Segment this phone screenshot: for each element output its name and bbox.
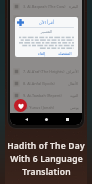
staticText: التوبة bbox=[70, 93, 79, 97]
button[interactable]: 4. Aal-e-Imran (Family) bbox=[10, 12, 82, 24]
staticText: آل عمران bbox=[63, 16, 79, 21]
button[interactable]: Back bbox=[21, 114, 31, 124]
other: Add bbox=[17, 19, 24, 26]
staticText: أقرأ الآن bbox=[26, 19, 67, 25]
staticText: 4. Aal-e-Imran (Family) bbox=[23, 16, 63, 21]
staticText: 8. Al-Anfal (Spoils) bbox=[23, 81, 68, 86]
staticText: إلغاء bbox=[38, 51, 46, 56]
button[interactable]: 9. At-Tawbah (Repent) bbox=[10, 89, 82, 101]
staticText: 3. Al-Baqarah (The Cow) bbox=[23, 4, 69, 9]
button[interactable]: 8. Al-Anfal (Spoils) bbox=[10, 77, 82, 89]
button[interactable]: 10. Yunus (Jonah) bbox=[10, 101, 82, 113]
button[interactable]: 7. Al-A'raf (The Heights) bbox=[10, 65, 82, 77]
staticText: الأعراف bbox=[66, 69, 79, 73]
button[interactable]: المفضلة bbox=[55, 50, 75, 57]
staticText: التفسير bbox=[15, 30, 78, 34]
button[interactable]: Favourites bbox=[14, 99, 27, 112]
staticText: Hadith of The Day bbox=[7, 140, 85, 152]
staticText: الأنفال bbox=[68, 81, 79, 85]
button[interactable]: 3. Al-Baqarah (The Cow) bbox=[10, 0, 82, 12]
staticText: يونس bbox=[70, 105, 79, 109]
staticText: 10. Yunus (Jonah) bbox=[23, 105, 70, 110]
staticText: With 6 Language bbox=[10, 153, 83, 165]
staticText: المفضلة bbox=[58, 51, 72, 56]
staticText: Translation bbox=[22, 166, 71, 178]
staticText: البقرة bbox=[69, 4, 79, 8]
staticText: 9. At-Tawbah (Repent) bbox=[23, 93, 70, 98]
button[interactable]: Recents bbox=[62, 114, 72, 124]
button[interactable]: إلغاء bbox=[35, 50, 49, 57]
staticText: 7. Al-A'raf (The Heights) bbox=[23, 69, 66, 74]
button[interactable]: Home bbox=[41, 114, 51, 124]
